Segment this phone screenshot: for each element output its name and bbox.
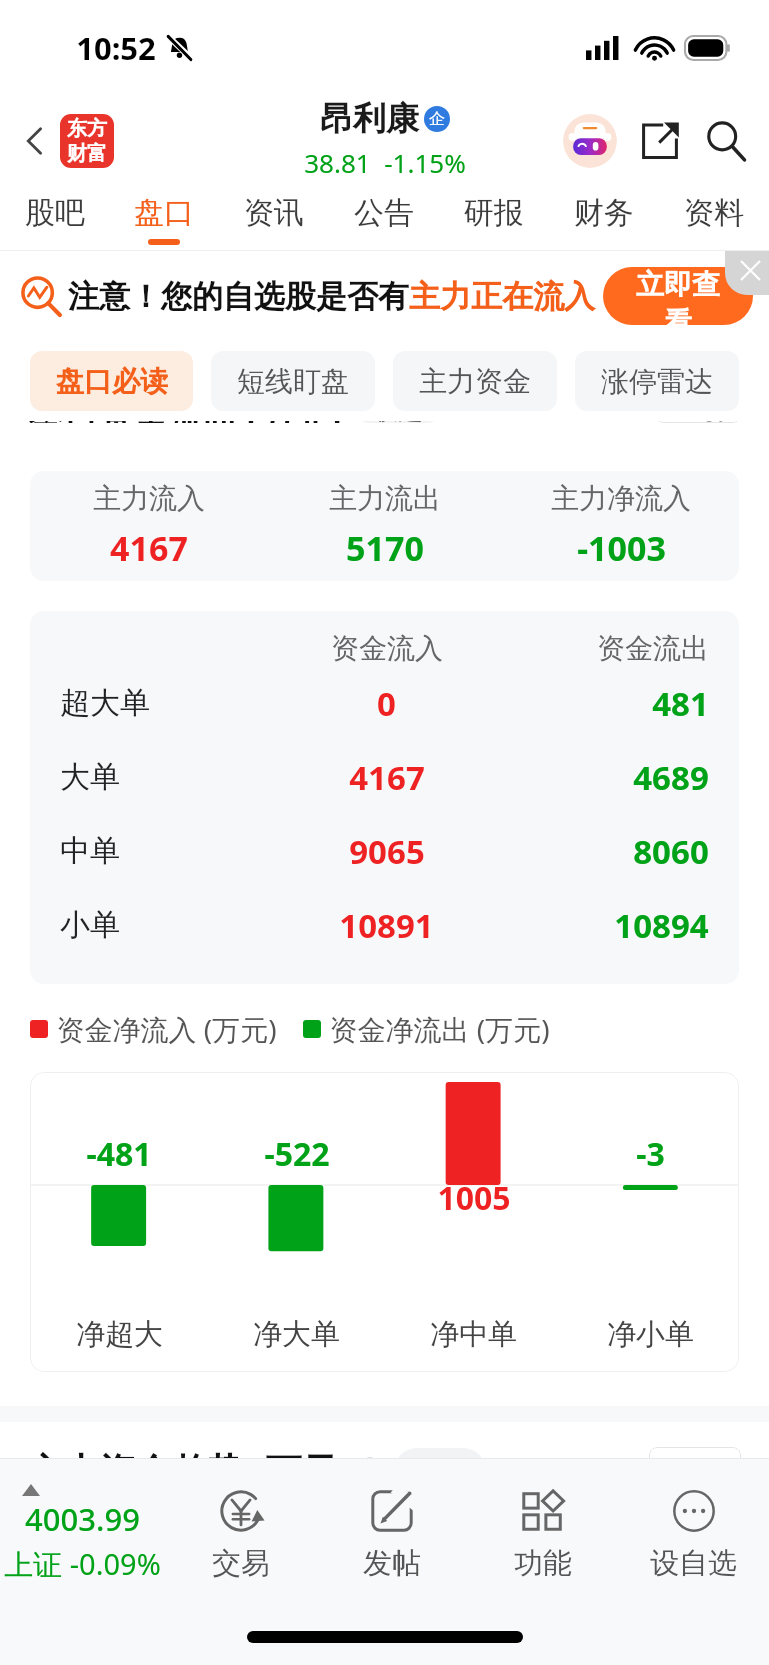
staticText: 公告 (354, 194, 414, 232)
staticText: 收起 (414, 1455, 466, 1488)
button[interactable]: Search (697, 112, 755, 170)
staticText: 发帖 (363, 1545, 421, 1582)
button[interactable]: 10日净流入 (393, 1521, 558, 1581)
button[interactable]: 东方财富 (60, 114, 114, 168)
staticText: 3日净流入 (235, 1534, 350, 1568)
button[interactable]: 盘口必读 (30, 351, 193, 411)
button[interactable]: 盘口 (109, 187, 219, 251)
staticText: 10891 (339, 903, 434, 948)
staticText: 交易 (212, 1545, 270, 1582)
staticText: 研报 (464, 194, 524, 232)
button[interactable]: 发帖 (316, 1459, 467, 1609)
button[interactable]: 置顶 (669, 1447, 721, 1495)
staticText: 主力资金趋势 (万元) (28, 1446, 350, 1495)
staticText: -481 (86, 1132, 152, 1176)
staticText: 上证 -0.09% (4, 1544, 161, 1584)
staticText: 盘口 (134, 194, 194, 232)
staticText: 主力资金 (419, 364, 531, 399)
staticText: 资讯 (244, 194, 304, 232)
staticText: 功能 (514, 1545, 572, 1582)
button[interactable]: 资料 (659, 187, 769, 251)
button[interactable]: 中单 (30, 814, 739, 888)
staticText: 中单 (60, 832, 120, 870)
button[interactable]: 交易 (165, 1459, 316, 1609)
staticText: 净中单 (430, 1316, 517, 1353)
staticText: 置顶 (673, 421, 723, 423)
button[interactable]: 涨停雷达 (575, 351, 739, 411)
button[interactable]: 短线盯盘 (211, 351, 375, 411)
button[interactable]: Close (725, 251, 769, 295)
button[interactable]: 注意！您的自选股是否有 (20, 251, 753, 341)
staticText: 净小单 (607, 1316, 694, 1353)
button[interactable]: 当日净流入 (28, 1521, 192, 1581)
staticText: -522 (264, 1132, 330, 1176)
staticText: 10:52 (76, 27, 156, 69)
button[interactable]: 公告 (329, 187, 439, 251)
button[interactable]: 4003.99 (0, 1459, 165, 1609)
button[interactable]: 收起 (414, 1448, 466, 1494)
button[interactable]: 财务 (549, 187, 659, 251)
staticText: 财富 (67, 141, 107, 166)
staticText: 立即查看 (623, 267, 733, 325)
staticText: 主力净流入 (551, 481, 691, 516)
staticText: 资金净流出 (万元) (329, 1010, 550, 1048)
button[interactable]: 20日净流入 (576, 1521, 741, 1581)
staticText: 注意！您的自选股是否有 (68, 277, 409, 316)
staticText: -1003 (577, 525, 666, 571)
staticText: 净大单 (253, 1316, 340, 1353)
staticText: 5170 (346, 525, 424, 571)
staticText: 置顶 (669, 1455, 721, 1488)
staticText: 4167 (349, 755, 425, 800)
staticText: 短线盯盘 (237, 364, 349, 399)
staticText: 财务 (574, 194, 634, 232)
staticText: 4689 (633, 755, 709, 800)
staticText: 4167 (110, 525, 188, 571)
staticText: 20日净流入 (594, 1534, 723, 1568)
staticText: 昂利康 (320, 98, 419, 140)
button[interactable]: 股吧 (0, 187, 109, 251)
button[interactable]: 资讯 (219, 187, 329, 251)
staticText: 股吧 (25, 194, 85, 232)
staticText: 0 (377, 681, 396, 726)
button[interactable]: AI assistant (559, 110, 621, 172)
staticText: 净超大 (76, 1316, 163, 1353)
staticText: 1005 (437, 1176, 511, 1220)
button[interactable]: Back (10, 116, 60, 166)
staticText: 东方 (67, 116, 107, 141)
staticText: 盘口必读 (56, 364, 168, 399)
staticText: 企 (429, 109, 445, 129)
staticText: 小单 (60, 906, 120, 944)
staticText: 资金流入 (331, 631, 443, 666)
button[interactable]: 功能 (467, 1459, 618, 1609)
staticText: 超大单 (60, 684, 150, 722)
staticText: 10894 (614, 903, 709, 948)
staticText: 9065 (349, 829, 425, 874)
staticText: 当日净流入 (48, 1536, 173, 1567)
staticText: 主力正在流入 (409, 277, 595, 316)
button[interactable]: 大单 (30, 740, 739, 814)
button[interactable]: Share (631, 112, 689, 170)
staticText: 主力流出 (329, 481, 441, 516)
staticText: ? (366, 1458, 375, 1484)
staticText: 资金流出 (597, 631, 709, 666)
staticText: 38.81 -1.15% (304, 145, 466, 180)
staticText: 8060 (633, 829, 709, 874)
button[interactable]: 3日净流入 (210, 1521, 375, 1581)
button[interactable]: 研报 (439, 187, 549, 251)
button[interactable]: 主力流入 (30, 471, 739, 581)
staticText: 资料 (684, 194, 744, 232)
staticText: 资金净流入 (万元) (56, 1010, 277, 1048)
button[interactable]: 主力资金 (393, 351, 557, 411)
staticText: -3 (636, 1132, 665, 1176)
staticText: 10日净流入 (411, 1534, 540, 1568)
staticText: 设自选 (650, 1545, 737, 1582)
button[interactable]: 立即查看 (623, 267, 733, 325)
staticText: 收起 (373, 421, 423, 423)
staticText: 今日资金流向 (万元) (28, 421, 341, 423)
staticText: 涨停雷达 (601, 364, 713, 399)
button[interactable]: 超大单 (30, 666, 739, 740)
staticText: 大单 (60, 758, 120, 796)
staticText: 481 (652, 681, 709, 726)
button[interactable]: 小单 (30, 888, 739, 962)
button[interactable]: 设自选 (618, 1459, 769, 1609)
